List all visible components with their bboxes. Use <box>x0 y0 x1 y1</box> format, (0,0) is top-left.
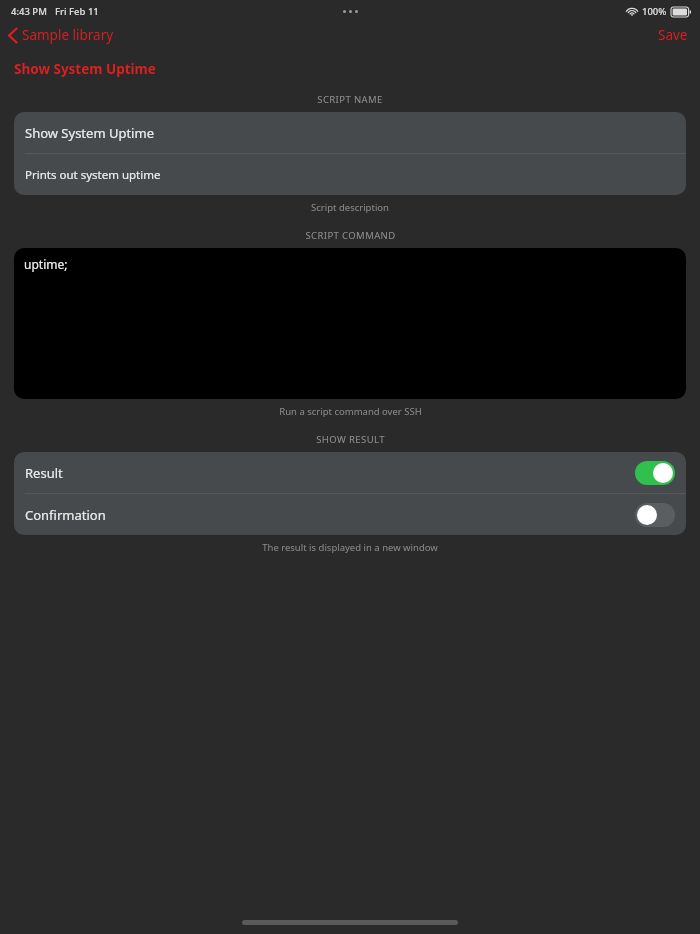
staticText: The result is displayed in a new window <box>262 541 438 554</box>
button[interactable]: Confirmation <box>14 494 686 535</box>
staticText: uptime; <box>24 256 68 272</box>
staticText: Save <box>658 26 688 44</box>
button[interactable]: uptime; <box>14 248 686 399</box>
button[interactable]: Confirmation toggle <box>635 503 675 527</box>
staticText: Prints out system uptime <box>25 167 161 183</box>
staticText: SHOW RESULT <box>316 433 385 446</box>
staticText: Show System Uptime <box>25 124 154 142</box>
button[interactable]: Prints out system uptime <box>14 154 686 195</box>
button[interactable]: Show System Uptime <box>14 112 686 153</box>
staticText: Sample library <box>22 26 114 44</box>
button[interactable]: Result toggle <box>635 461 675 485</box>
staticText: SCRIPT COMMAND <box>305 229 396 242</box>
staticText: Result <box>25 464 63 482</box>
staticText: Show System Uptime <box>14 60 156 78</box>
staticText: Script description <box>311 201 389 214</box>
staticText: Confirmation <box>25 506 106 524</box>
staticText: 100% <box>642 5 667 18</box>
staticText: Fri Feb 11 <box>55 5 99 18</box>
button[interactable]: Save <box>646 23 700 47</box>
button[interactable]: Sample library <box>0 24 122 46</box>
staticText: 4:43 PM <box>11 5 47 18</box>
button[interactable]: Result <box>14 452 686 493</box>
staticText: Run a script command over SSH <box>279 405 422 418</box>
staticText: SCRIPT NAME <box>317 93 383 106</box>
